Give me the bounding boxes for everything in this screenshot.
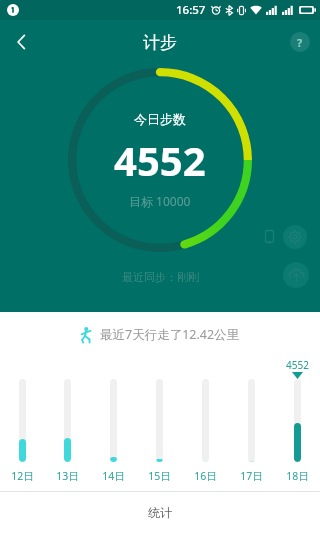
staticText: 17日 xyxy=(240,469,263,483)
staticText: 目标 10000 xyxy=(129,193,191,209)
staticText: 计步 xyxy=(143,32,177,53)
staticText: 最近同步：刚刚 xyxy=(122,270,199,284)
button[interactable] xyxy=(182,379,228,462)
staticText: 4552 xyxy=(286,358,309,372)
button[interactable] xyxy=(90,379,136,462)
staticText: 13日 xyxy=(56,469,79,483)
staticText: 4552 xyxy=(114,133,206,187)
button[interactable]: Sync xyxy=(283,262,309,288)
button[interactable]: Back xyxy=(0,20,44,64)
button[interactable] xyxy=(228,379,274,462)
staticText: 最近7天行走了12.42公里 xyxy=(100,326,240,343)
staticText: 16:57 xyxy=(176,2,206,18)
button[interactable] xyxy=(0,379,45,462)
staticText: 16日 xyxy=(194,469,217,483)
staticText: 15日 xyxy=(148,469,171,483)
button[interactable] xyxy=(45,379,90,462)
button[interactable] xyxy=(274,379,320,462)
staticText: 统计 xyxy=(148,505,172,520)
button[interactable]: Help xyxy=(290,32,310,52)
staticText: 今日步数 xyxy=(134,111,186,127)
staticText: 12日 xyxy=(11,469,34,483)
button[interactable] xyxy=(136,379,182,462)
button[interactable]: Settings xyxy=(283,225,307,249)
staticText: ? xyxy=(297,35,303,50)
staticText: 14日 xyxy=(102,469,125,483)
button[interactable]: Device xyxy=(265,230,274,243)
button[interactable]: 统计 xyxy=(124,497,196,528)
staticText: 18日 xyxy=(286,469,309,483)
